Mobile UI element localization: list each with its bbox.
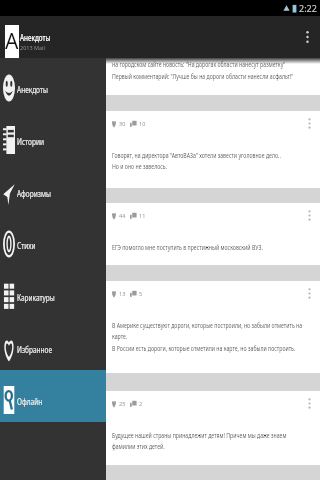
staticText: Будущее нашей страны принадлежит детям! … [112,430,310,452]
button[interactable]: Стихи [0,214,106,266]
staticText: Избранное [17,343,52,356]
staticText: Офлайн [17,395,43,408]
button[interactable]: 13 [106,281,320,373]
staticText: Карикатуры [17,291,55,304]
button[interactable]: 30 [106,111,320,188]
staticText: 10 [139,120,146,127]
button[interactable]: Афоризмы [0,162,106,214]
staticText: Афоризмы [17,187,51,199]
staticText: 30 [119,120,126,127]
staticText: A [5,27,19,56]
staticText: ЕГЭ помогло мне поступить в престижный м… [112,242,263,251]
staticText: В Америке существуют дороги, которые пос… [112,320,310,354]
button[interactable]: Истории [0,110,106,162]
staticText: 44 [119,212,126,219]
staticText: на городском сайте новость: "На дорогах … [112,59,294,82]
staticText: 25 [119,400,126,407]
staticText: Анекдоты [20,31,51,44]
button[interactable]: Joke options [302,288,316,299]
staticText: 11 [139,212,146,219]
staticText: 2 [139,400,143,407]
button[interactable]: Анекдоты [0,58,106,110]
button[interactable]: Joke options [302,210,316,221]
button[interactable]: Карикатуры [0,266,106,318]
button[interactable]: Офлайн [0,370,106,422]
staticText: Стихи [17,239,36,251]
staticText: 2013 Mail [20,44,45,51]
staticText: Анекдоты [17,83,48,95]
staticText: 5 [139,290,143,297]
button[interactable]: Joke options [302,118,316,129]
button[interactable]: на городском сайте новость: "На дорогах … [106,58,320,95]
button[interactable]: Joke options [302,398,316,409]
staticText: 13 [119,290,126,297]
staticText: Говорят, на директора "АвтоВАЗа" хотели … [112,150,281,172]
staticText: Истории [17,135,44,147]
button[interactable]: More options [294,24,320,50]
staticText: 2:22 [299,2,317,14]
button[interactable]: 25 [106,391,320,465]
button[interactable]: 44 [106,203,320,265]
button[interactable]: Избранное [0,318,106,370]
